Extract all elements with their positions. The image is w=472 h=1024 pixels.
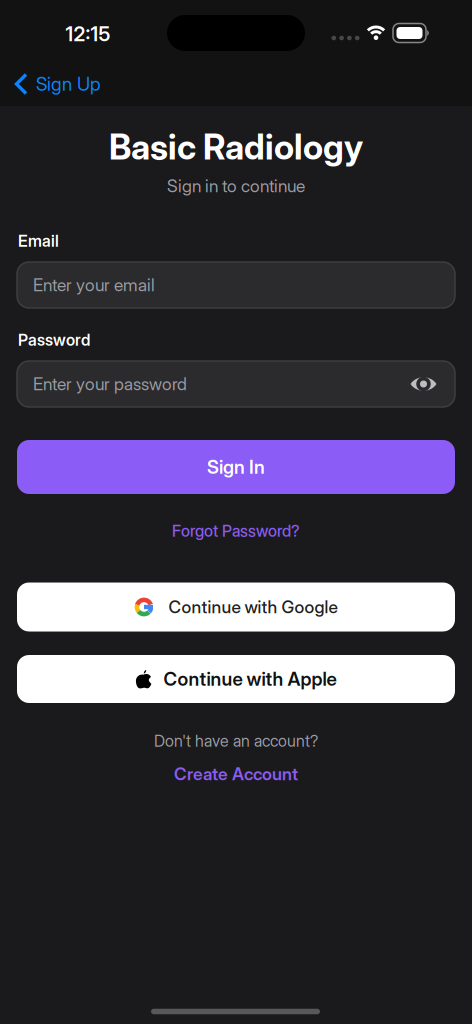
staticText: Email	[18, 232, 59, 250]
staticText: Enter your password	[33, 374, 187, 394]
staticText: 12:15	[65, 22, 110, 46]
staticText: Forgot Password?	[172, 522, 300, 540]
button[interactable]: Show password	[410, 375, 436, 393]
staticText: Sign Up	[36, 73, 101, 95]
button[interactable]: Continue with Apple	[17, 655, 455, 703]
staticText: Sign in to continue	[167, 176, 305, 196]
staticText: Enter your email	[33, 275, 155, 295]
staticText: Password	[18, 331, 90, 349]
staticText: Don't have an account?	[154, 732, 318, 750]
staticText: Basic Radiology	[109, 127, 363, 167]
staticText: Sign In	[207, 456, 265, 478]
button[interactable]: Create Account	[174, 764, 298, 784]
button[interactable]: Continue with Google	[17, 582, 455, 631]
button[interactable]: Forgot Password?	[172, 522, 300, 540]
staticText: Continue with Google	[168, 597, 337, 617]
staticText: Continue with Apple	[163, 668, 336, 690]
staticText: Create Account	[174, 764, 298, 784]
button[interactable]: Sign Up	[0, 73, 101, 95]
button[interactable]: Sign In	[17, 440, 455, 494]
